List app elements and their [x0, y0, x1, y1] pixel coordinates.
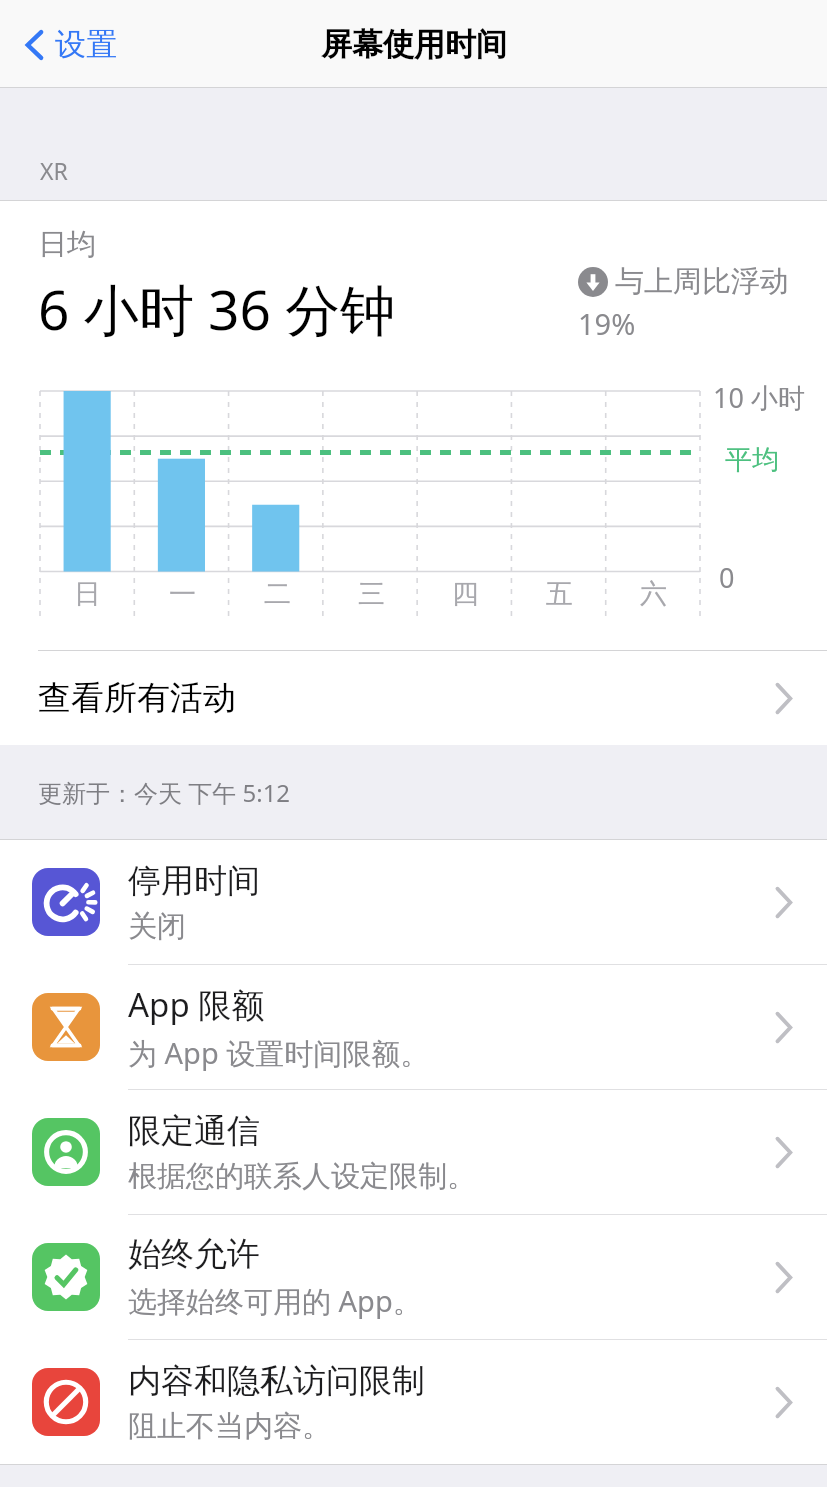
- other: 展开: [774, 1261, 793, 1294]
- staticText: XR: [40, 155, 68, 186]
- staticText: 限定通信: [128, 1110, 260, 1152]
- button[interactable]: 内容和隐私访问限制: [0, 1340, 827, 1464]
- staticText: 日: [74, 577, 101, 611]
- staticText: 查看所有活动: [38, 677, 236, 719]
- other: 展开: [774, 886, 793, 919]
- staticText: 二: [264, 577, 291, 611]
- staticText: 选择始终可用的 App。: [128, 1281, 422, 1321]
- staticText: 四: [452, 577, 479, 611]
- other: 展开: [774, 1386, 793, 1419]
- staticText: 始终允许: [128, 1233, 260, 1275]
- staticText: 0: [719, 559, 735, 596]
- staticText: 与上周比浮动: [615, 263, 789, 300]
- button[interactable]: 限定通信: [0, 1090, 827, 1214]
- other: 展开: [774, 682, 793, 715]
- staticText: 10 小时: [713, 379, 805, 416]
- button[interactable]: 始终允许: [0, 1215, 827, 1339]
- button[interactable]: 设置: [18, 19, 123, 70]
- other: 展开: [774, 1011, 793, 1044]
- staticText: 关闭: [128, 908, 186, 945]
- staticText: 6 小时 36 分钟: [38, 271, 396, 346]
- staticText: 根据您的联系人设定限制。: [128, 1158, 476, 1195]
- staticText: 六: [640, 577, 667, 611]
- staticText: 19%: [578, 304, 636, 343]
- staticText: 停用时间: [128, 860, 260, 902]
- staticText: 五: [546, 577, 573, 611]
- staticText: 阻止不当内容。: [128, 1408, 331, 1445]
- staticText: 为 App 设置时间限额。: [128, 1033, 430, 1073]
- staticText: 三: [358, 577, 385, 611]
- staticText: 一: [169, 577, 196, 611]
- staticText: 更新于：今天 下午 5:12: [38, 776, 291, 809]
- button[interactable]: 停用时间: [0, 840, 827, 964]
- staticText: 设置: [55, 25, 117, 64]
- button[interactable]: App 限额: [0, 965, 827, 1089]
- staticText: 内容和隐私访问限制: [128, 1360, 425, 1402]
- staticText: 日均: [38, 226, 96, 263]
- staticText: 屏幕使用时间: [321, 25, 507, 64]
- button[interactable]: 查看所有活动: [0, 651, 827, 745]
- staticText: 平均: [725, 443, 779, 477]
- staticText: App 限额: [128, 982, 265, 1027]
- other: 展开: [774, 1136, 793, 1169]
